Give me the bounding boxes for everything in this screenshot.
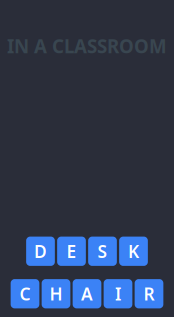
button[interactable]: D [26,237,55,266]
staticText: IN A CLASSROOM [7,34,167,58]
staticText: I [115,282,121,305]
staticText: R [143,282,154,305]
staticText: D [34,240,47,263]
staticText: H [49,282,62,305]
button[interactable]: E [57,237,86,266]
staticText: K [128,240,139,263]
button[interactable]: I [104,279,132,308]
button[interactable]: H [42,279,70,308]
staticText: E [66,240,76,263]
staticText: C [19,282,30,305]
button[interactable]: C [11,279,39,308]
staticText: A [81,282,93,305]
staticText: S [97,240,107,263]
button[interactable]: K [119,237,148,266]
button[interactable]: R [135,279,163,308]
button[interactable]: S [88,237,117,266]
button[interactable]: A [73,279,101,308]
